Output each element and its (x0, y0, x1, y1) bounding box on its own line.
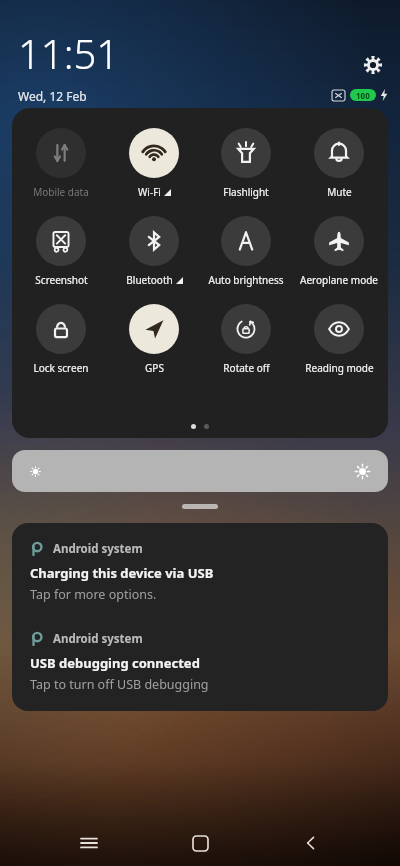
staticText: Android system (53, 541, 143, 557)
button[interactable]: Rotate off (202, 304, 290, 375)
button[interactable]: Flashlight (202, 128, 290, 199)
button[interactable]: Mobile data (17, 128, 105, 199)
button[interactable]: Reading mode (295, 304, 383, 375)
staticText: Aeroplane mode (300, 273, 378, 287)
staticText: Tap to turn off USB debugging (30, 676, 209, 693)
staticText: Screenshot (35, 273, 88, 287)
staticText: Bluetooth (126, 273, 173, 287)
button[interactable]: Wi-Fi (110, 128, 198, 199)
button[interactable]: Android system (12, 621, 388, 703)
button[interactable]: Mute (295, 128, 383, 199)
button[interactable]: Auto brightness (202, 216, 290, 287)
button[interactable]: Screenshot (17, 216, 105, 287)
staticText: 100 (356, 90, 370, 101)
staticText: Tap for more options. (30, 586, 157, 603)
button[interactable]: Aeroplane mode (295, 216, 383, 287)
staticText: Wi-Fi (138, 185, 161, 199)
staticText: Android system (53, 631, 143, 647)
staticText: USB debugging connected (30, 654, 200, 672)
button[interactable]: Bluetooth (110, 216, 198, 287)
staticText: Auto brightness (208, 273, 284, 287)
staticText: Reading mode (305, 361, 374, 375)
staticText: Charging this device via USB (30, 564, 214, 582)
staticText: Flashlight (223, 185, 269, 199)
staticText: Mobile data (33, 185, 89, 199)
staticText: Lock screen (33, 361, 89, 375)
button[interactable]: Back (289, 821, 333, 865)
staticText: GPS (145, 361, 164, 375)
button[interactable]: Android system (12, 531, 388, 613)
staticText: Wed, 12 Feb (18, 88, 87, 104)
staticText: 11:51 (18, 26, 120, 80)
button[interactable]: Recents (67, 821, 111, 865)
staticText: Mute (327, 185, 352, 199)
button[interactable]: Lock screen (17, 304, 105, 375)
button[interactable]: Home (178, 821, 222, 865)
button[interactable]: GPS (110, 304, 198, 375)
staticText: Rotate off (223, 361, 270, 375)
button[interactable]: Brightness (12, 450, 388, 492)
button[interactable]: Settings (360, 52, 386, 78)
